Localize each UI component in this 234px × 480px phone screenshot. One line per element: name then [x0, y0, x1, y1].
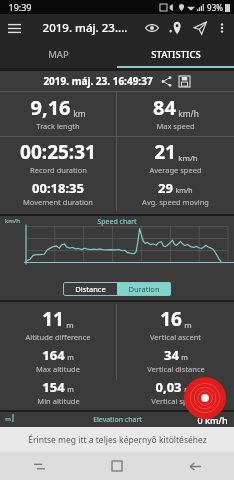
staticText: km/h — [178, 152, 198, 163]
staticText: Avg. speed moving — [142, 197, 209, 207]
staticText: Max altitude — [36, 364, 80, 374]
staticText: STATISTICS — [151, 48, 201, 61]
staticText: 11 — [42, 306, 64, 332]
button[interactable]: Home — [78, 452, 156, 480]
button[interactable]: Recent apps — [0, 452, 78, 480]
button[interactable]: Distance — [63, 282, 117, 296]
button[interactable]: Record — [184, 377, 226, 419]
staticText: Movement duration — [23, 197, 93, 207]
staticText: Altitude difference — [25, 332, 91, 342]
button[interactable]: Navigate — [188, 14, 212, 42]
staticText: 19:39 — [8, 1, 32, 13]
staticText: Speed chart — [97, 217, 137, 227]
staticText: 84 — [153, 94, 176, 121]
staticText: Min altitude — [37, 396, 80, 406]
staticText: km/h — [175, 186, 193, 196]
staticText: Vertical ascent — [150, 332, 201, 342]
staticText: 9,16 — [30, 94, 71, 121]
staticText: m — [67, 385, 74, 395]
staticText: 00:18:35 — [32, 179, 84, 197]
staticText: Elevation chart — [93, 415, 142, 425]
staticText: km — [73, 108, 86, 119]
staticText: 164 — [42, 346, 65, 364]
button[interactable]: Duration — [117, 282, 171, 296]
staticText: Distance — [75, 284, 106, 294]
button[interactable]: Share — [159, 74, 173, 88]
staticText: m — [184, 319, 192, 330]
button[interactable]: Show track — [140, 14, 164, 42]
button[interactable]: Save — [177, 74, 191, 88]
staticText: Vertical speed — [151, 396, 201, 406]
staticText: m — [181, 353, 188, 363]
staticText: m/s — [184, 385, 197, 395]
button[interactable]: MAP — [0, 42, 117, 66]
staticText: km/h — [5, 217, 20, 225]
staticText: km/h — [178, 108, 199, 119]
button[interactable]: Add waypoint — [164, 14, 188, 42]
staticText: 0 km/h — [197, 414, 228, 426]
button[interactable]: Open navigation menu — [0, 14, 28, 42]
staticText: Max speed — [156, 121, 195, 131]
button[interactable]: More options — [212, 14, 232, 42]
button[interactable]: STATISTICS — [117, 42, 234, 66]
staticText: 2019. máj. 23.... — [30, 20, 140, 36]
staticText: 00:25:31 — [20, 139, 96, 165]
staticText: 29 — [158, 179, 173, 197]
staticText: 93% — [207, 2, 223, 13]
staticText: m — [67, 353, 74, 363]
staticText: Duration — [128, 284, 160, 294]
button[interactable]: Back — [156, 452, 234, 480]
staticText: Average speed — [149, 165, 202, 175]
staticText: m — [5, 415, 11, 423]
staticText: 2019. máj. 23. 16:49:37 — [43, 74, 153, 88]
staticText: 21 — [154, 139, 176, 165]
staticText: Track length — [36, 121, 80, 131]
staticText: Érintse meg itt a teljes képernyő kitölt… — [28, 434, 207, 446]
staticText: 0,03 — [155, 378, 182, 396]
staticText: MAP — [48, 48, 69, 61]
staticText: Record duration — [30, 165, 87, 175]
staticText: Vertical distance — [147, 364, 205, 374]
staticText: m — [66, 319, 74, 330]
staticText: 34 — [164, 346, 179, 364]
staticText: 154 — [42, 378, 65, 396]
staticText: 16 — [160, 306, 182, 332]
